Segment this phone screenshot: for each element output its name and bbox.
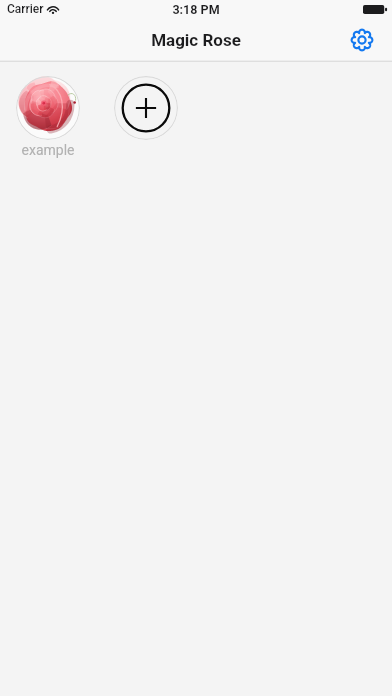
button[interactable]: example rose [16, 76, 80, 140]
staticText: Magic Rose [0, 30, 392, 50]
button[interactable]: Add [114, 76, 178, 140]
staticText: example [16, 142, 80, 158]
staticText: 3:18 PM [0, 2, 392, 17]
staticText: Carrier [7, 2, 44, 16]
button[interactable]: Settings [347, 25, 376, 54]
